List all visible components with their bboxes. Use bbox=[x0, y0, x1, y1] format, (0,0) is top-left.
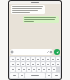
button[interactable]: Key bbox=[52, 73, 60, 78]
button[interactable]: Key bbox=[27, 67, 31, 72]
button[interactable]: Key bbox=[21, 62, 25, 66]
button[interactable]: Key bbox=[41, 57, 45, 61]
button[interactable]: Key bbox=[32, 67, 36, 72]
button[interactable]: Key bbox=[10, 73, 18, 78]
button[interactable]: Key bbox=[16, 57, 20, 61]
button[interactable]: Key bbox=[19, 73, 24, 78]
button[interactable]: Key bbox=[36, 57, 40, 61]
button[interactable]: Key bbox=[16, 67, 21, 72]
button[interactable]: Key bbox=[46, 62, 50, 66]
button[interactable]: Key bbox=[52, 67, 56, 72]
button[interactable]: Key bbox=[26, 57, 30, 61]
other: Attach bbox=[47, 51, 49, 53]
button[interactable]: Key bbox=[41, 62, 45, 66]
button[interactable]: Key bbox=[56, 57, 60, 61]
button[interactable]: Key bbox=[42, 67, 46, 72]
button[interactable]: Key bbox=[51, 57, 55, 61]
button[interactable]: Key bbox=[37, 67, 41, 72]
button[interactable]: Key bbox=[46, 73, 51, 78]
button[interactable]: Key bbox=[46, 57, 50, 61]
button[interactable]: Key bbox=[22, 67, 26, 72]
button[interactable]: Key bbox=[36, 62, 40, 66]
button[interactable]: Key bbox=[21, 57, 25, 61]
button[interactable]: Key bbox=[10, 62, 15, 66]
button[interactable]: Send bbox=[54, 49, 60, 55]
button[interactable]: Key bbox=[51, 62, 55, 66]
button[interactable]: Emoji bbox=[10, 49, 53, 55]
button[interactable]: Key bbox=[25, 73, 45, 78]
button[interactable] bbox=[23, 16, 59, 23]
button[interactable]: Key bbox=[10, 67, 15, 72]
button[interactable]: Key bbox=[31, 57, 35, 61]
button[interactable]: Key bbox=[10, 57, 15, 61]
button[interactable]: Key bbox=[26, 62, 30, 66]
button[interactable]: Key bbox=[56, 62, 60, 66]
button[interactable]: Key bbox=[47, 67, 51, 72]
button[interactable] bbox=[11, 5, 45, 14]
button[interactable]: Key bbox=[16, 62, 20, 66]
button[interactable]: Key bbox=[31, 62, 35, 66]
